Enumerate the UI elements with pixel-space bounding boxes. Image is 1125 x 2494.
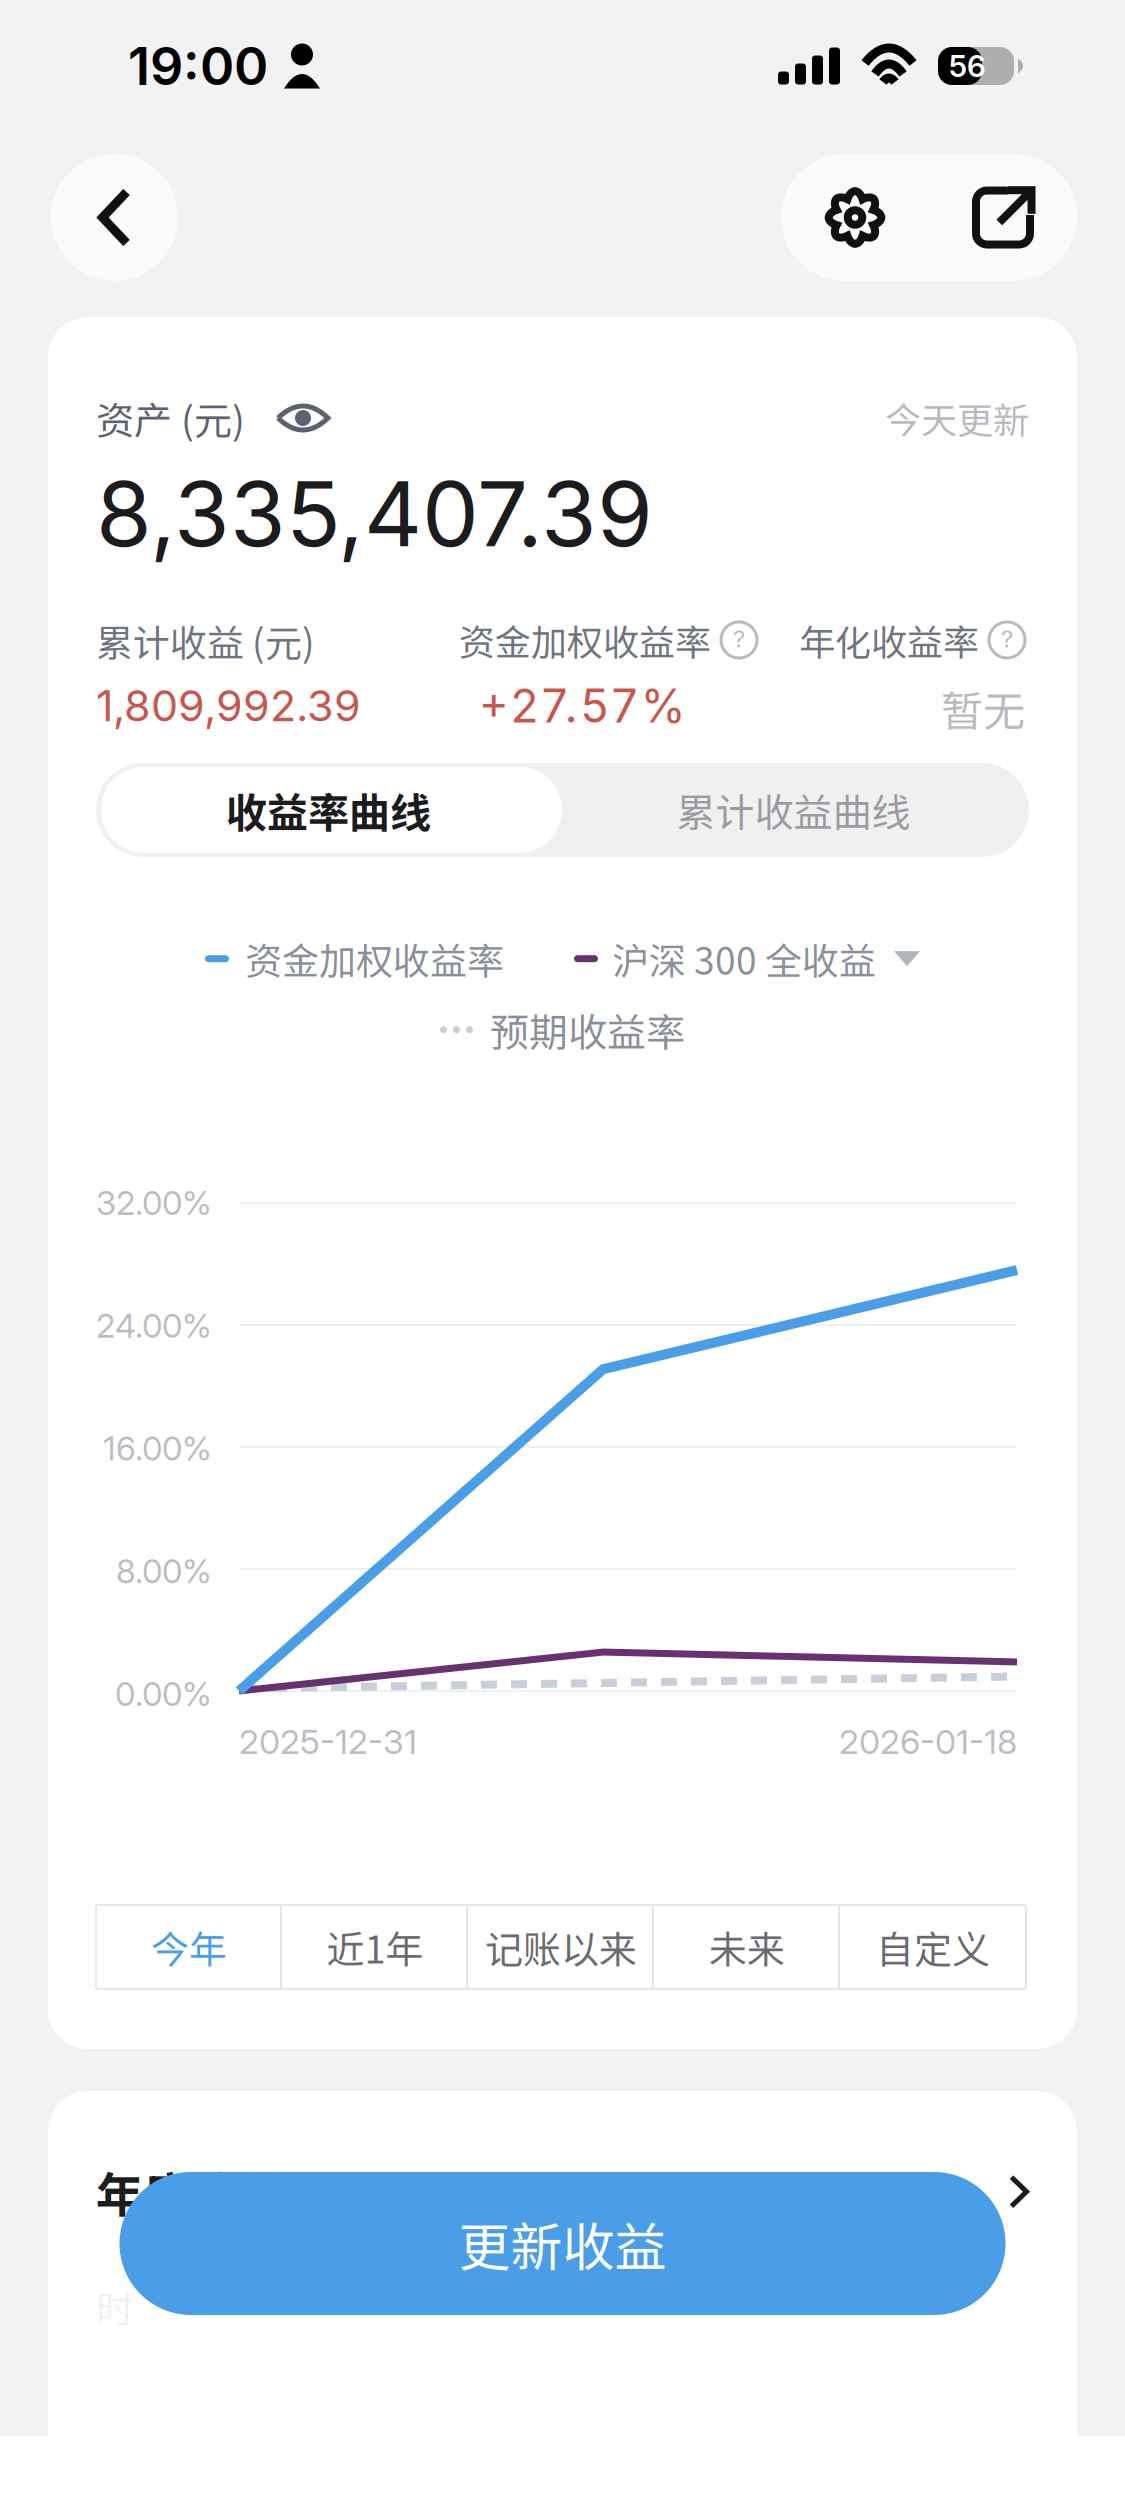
button[interactable]: 记账以来 — [468, 1905, 654, 1989]
staticText: 0.00% — [115, 1674, 212, 1714]
staticText: 56 — [949, 48, 986, 84]
staticText: 8.00% — [116, 1551, 212, 1591]
button[interactable]: 收益率曲线 — [96, 763, 561, 857]
staticText: 沪深 300 全收益 — [612, 932, 876, 985]
button[interactable]: Share — [929, 154, 1077, 281]
staticText: 2026-01-18 — [839, 1721, 1017, 1762]
button[interactable]: 累计收益曲线 — [561, 763, 1026, 857]
staticText: 预期收益率 — [490, 1001, 685, 1058]
staticText: 更新收益 — [458, 2206, 666, 2281]
staticText: 32.00% — [96, 1183, 212, 1223]
staticText: 近1年 — [326, 1919, 423, 1974]
staticText: 资产 (元) — [96, 390, 245, 445]
staticText: 资金加权收益率 — [459, 614, 711, 666]
staticText: 16.00% — [103, 1428, 212, 1468]
staticText: 资金加权收益率 — [245, 932, 504, 985]
staticText: 自定义 — [876, 1919, 990, 1974]
staticText: 今天更新 — [885, 392, 1029, 444]
staticText: 今年 — [151, 1919, 227, 1974]
staticText: 8,335,407.39 — [96, 459, 653, 568]
staticText: 累计收益 (元) — [96, 614, 315, 667]
staticText: 记账以来 — [485, 1919, 637, 1974]
staticText: 19:00 — [128, 34, 268, 97]
staticText: 年度收益对比 — [96, 2157, 384, 2226]
staticText: 2025-12-31 — [239, 1721, 417, 1762]
staticText: 未来 — [709, 1919, 785, 1974]
button[interactable]: 自定义 — [840, 1905, 1026, 1989]
staticText: +27.57% — [478, 678, 685, 734]
button[interactable]: 近1年 — [282, 1905, 468, 1989]
staticText: ? — [1001, 625, 1013, 653]
button[interactable]: Settings — [781, 154, 929, 281]
button[interactable]: 未来 — [654, 1905, 840, 1989]
button[interactable]: 更新收益 — [119, 2172, 1005, 2315]
staticText: 1,809,992.39 — [96, 679, 361, 731]
button[interactable]: Back — [51, 154, 178, 281]
button[interactable]: 今年 — [96, 1905, 282, 1989]
staticText: 收益率曲线 — [226, 780, 431, 840]
staticText: 24.00% — [96, 1306, 212, 1346]
staticText: ? — [733, 625, 745, 653]
staticText: 时 — [96, 2278, 134, 2333]
staticText: 年化收益率 — [799, 614, 979, 666]
staticText: 暂无 — [941, 678, 1025, 739]
staticText: 累计收益曲线 — [676, 782, 910, 838]
